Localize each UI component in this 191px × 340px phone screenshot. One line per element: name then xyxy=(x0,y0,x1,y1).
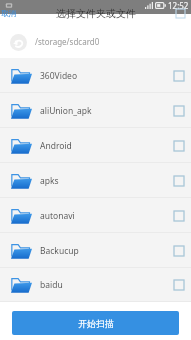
staticText: aliUnion_apk xyxy=(40,105,92,117)
button[interactable]: Select all xyxy=(172,5,188,21)
button[interactable]: Backucup xyxy=(0,233,191,268)
button[interactable]: Select autonavi xyxy=(169,206,189,226)
button[interactable]: 取消 xyxy=(0,7,20,20)
staticText: apks xyxy=(40,175,59,187)
button[interactable]: Select 360Video xyxy=(169,66,189,86)
button[interactable]: autonavi xyxy=(0,198,191,233)
button[interactable]: 360Video xyxy=(0,58,191,93)
button[interactable]: aliUnion_apk xyxy=(0,93,191,128)
staticText: 取消 xyxy=(1,9,16,18)
button[interactable]: Select apks xyxy=(169,171,189,191)
button[interactable]: apks xyxy=(0,163,191,198)
staticText: baidu xyxy=(40,279,63,291)
button[interactable]: Select Android xyxy=(169,136,189,156)
button[interactable]: Select Backucup xyxy=(169,241,189,261)
staticText: Backucup xyxy=(40,245,79,257)
button[interactable]: Up one level xyxy=(10,34,27,51)
staticText: 开始扫描 xyxy=(78,318,114,329)
button[interactable]: Select aliUnion_apk xyxy=(169,101,189,121)
staticText: 360Video xyxy=(40,70,78,82)
staticText: 选择文件夹或文件 xyxy=(56,7,136,20)
button[interactable]: Select baidu xyxy=(169,275,189,295)
button[interactable]: 开始扫描 xyxy=(12,311,179,335)
button[interactable]: baidu xyxy=(0,268,191,302)
staticText: 12:52 xyxy=(168,0,189,11)
button[interactable]: Android xyxy=(0,128,191,163)
staticText: /storage/sdcard0 xyxy=(35,36,100,47)
staticText: autonavi xyxy=(40,210,75,222)
staticText: Android xyxy=(40,140,72,152)
